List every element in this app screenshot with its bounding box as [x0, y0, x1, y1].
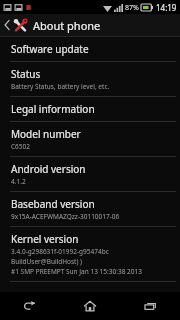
staticText: 14:19: [156, 2, 177, 13]
staticText: 3.4.0-g298631f-01992-g95474bc: [11, 247, 109, 256]
staticText: C6502: [11, 142, 30, 151]
button[interactable]: Legal information: [0, 97, 180, 121]
button[interactable]: Back: [0, 14, 180, 36]
button[interactable]: Status: [0, 62, 180, 96]
button[interactable]: Home: [60, 292, 120, 320]
staticText: Model number: [11, 127, 81, 141]
button[interactable]: Baseband version: [0, 192, 180, 226]
staticText: Battery Status, battery level, etc.: [11, 82, 110, 91]
button[interactable]: Kernel version: [0, 227, 180, 281]
staticText: Legal information: [11, 102, 95, 116]
staticText: BuildUser@BuildHost) ): [11, 257, 83, 266]
staticText: Kernel version: [11, 232, 79, 246]
staticText: 87%: [125, 3, 139, 13]
button[interactable]: Back: [0, 292, 60, 320]
button[interactable]: Software update: [0, 37, 180, 61]
staticText: Software update: [11, 42, 89, 56]
staticText: Status: [11, 67, 41, 81]
staticText: About phone: [33, 18, 101, 33]
button[interactable]: Android version: [0, 157, 180, 191]
button[interactable]: Model number: [0, 122, 180, 156]
staticText: Android version: [11, 162, 86, 176]
other: Back: [4, 19, 10, 31]
staticText: Baseband version: [11, 197, 95, 211]
staticText: 9x15A-ACEFWMAZQzz-30110017-06: [11, 212, 120, 221]
staticText: 4.1.2: [11, 177, 26, 186]
staticText: #1 SMP PREEMPT Sun Jan 13 15:30:38 2013: [11, 267, 142, 276]
button[interactable]: Recent apps: [120, 292, 180, 320]
